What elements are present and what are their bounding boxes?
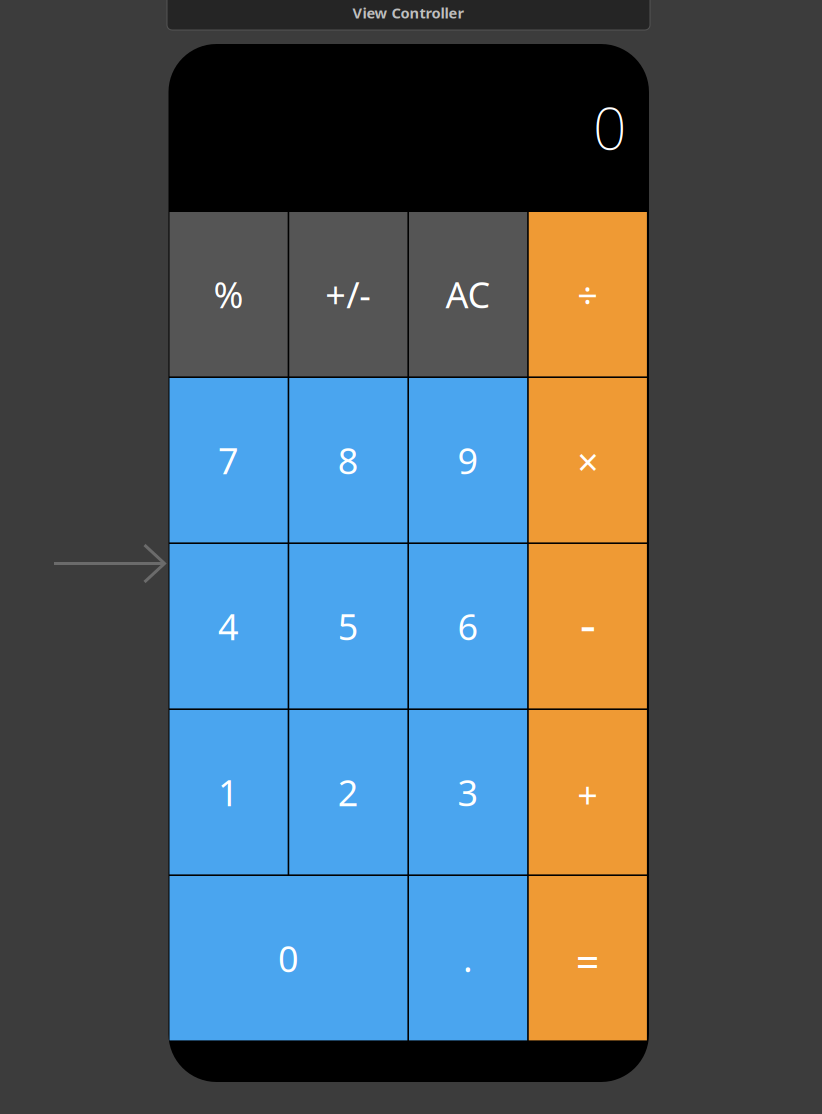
staticText: 5 (338, 602, 359, 650)
staticText: 0 (593, 88, 626, 166)
staticText: % (214, 270, 244, 318)
staticText: 4 (218, 602, 239, 650)
staticText: 0 (278, 934, 299, 982)
button[interactable]: View Controller (0, 0, 483, 50)
staticText: 7 (218, 436, 239, 484)
staticText: 1 (218, 768, 239, 816)
staticText: AC (446, 270, 491, 318)
staticText: ÷ (577, 270, 598, 318)
staticText: 6 (458, 602, 479, 650)
button[interactable]: 0 (0, 0, 238, 164)
staticText: View Controller (352, 3, 464, 22)
staticText: 9 (458, 436, 479, 484)
staticText: 3 (458, 768, 479, 816)
staticText: +/- (325, 270, 371, 318)
staticText: 8 (338, 436, 359, 484)
staticText: - (580, 590, 596, 657)
staticText: × (577, 437, 598, 486)
staticText: = (576, 934, 600, 988)
staticText: . (463, 934, 473, 982)
staticText: + (577, 771, 598, 818)
staticText: 2 (338, 768, 359, 816)
